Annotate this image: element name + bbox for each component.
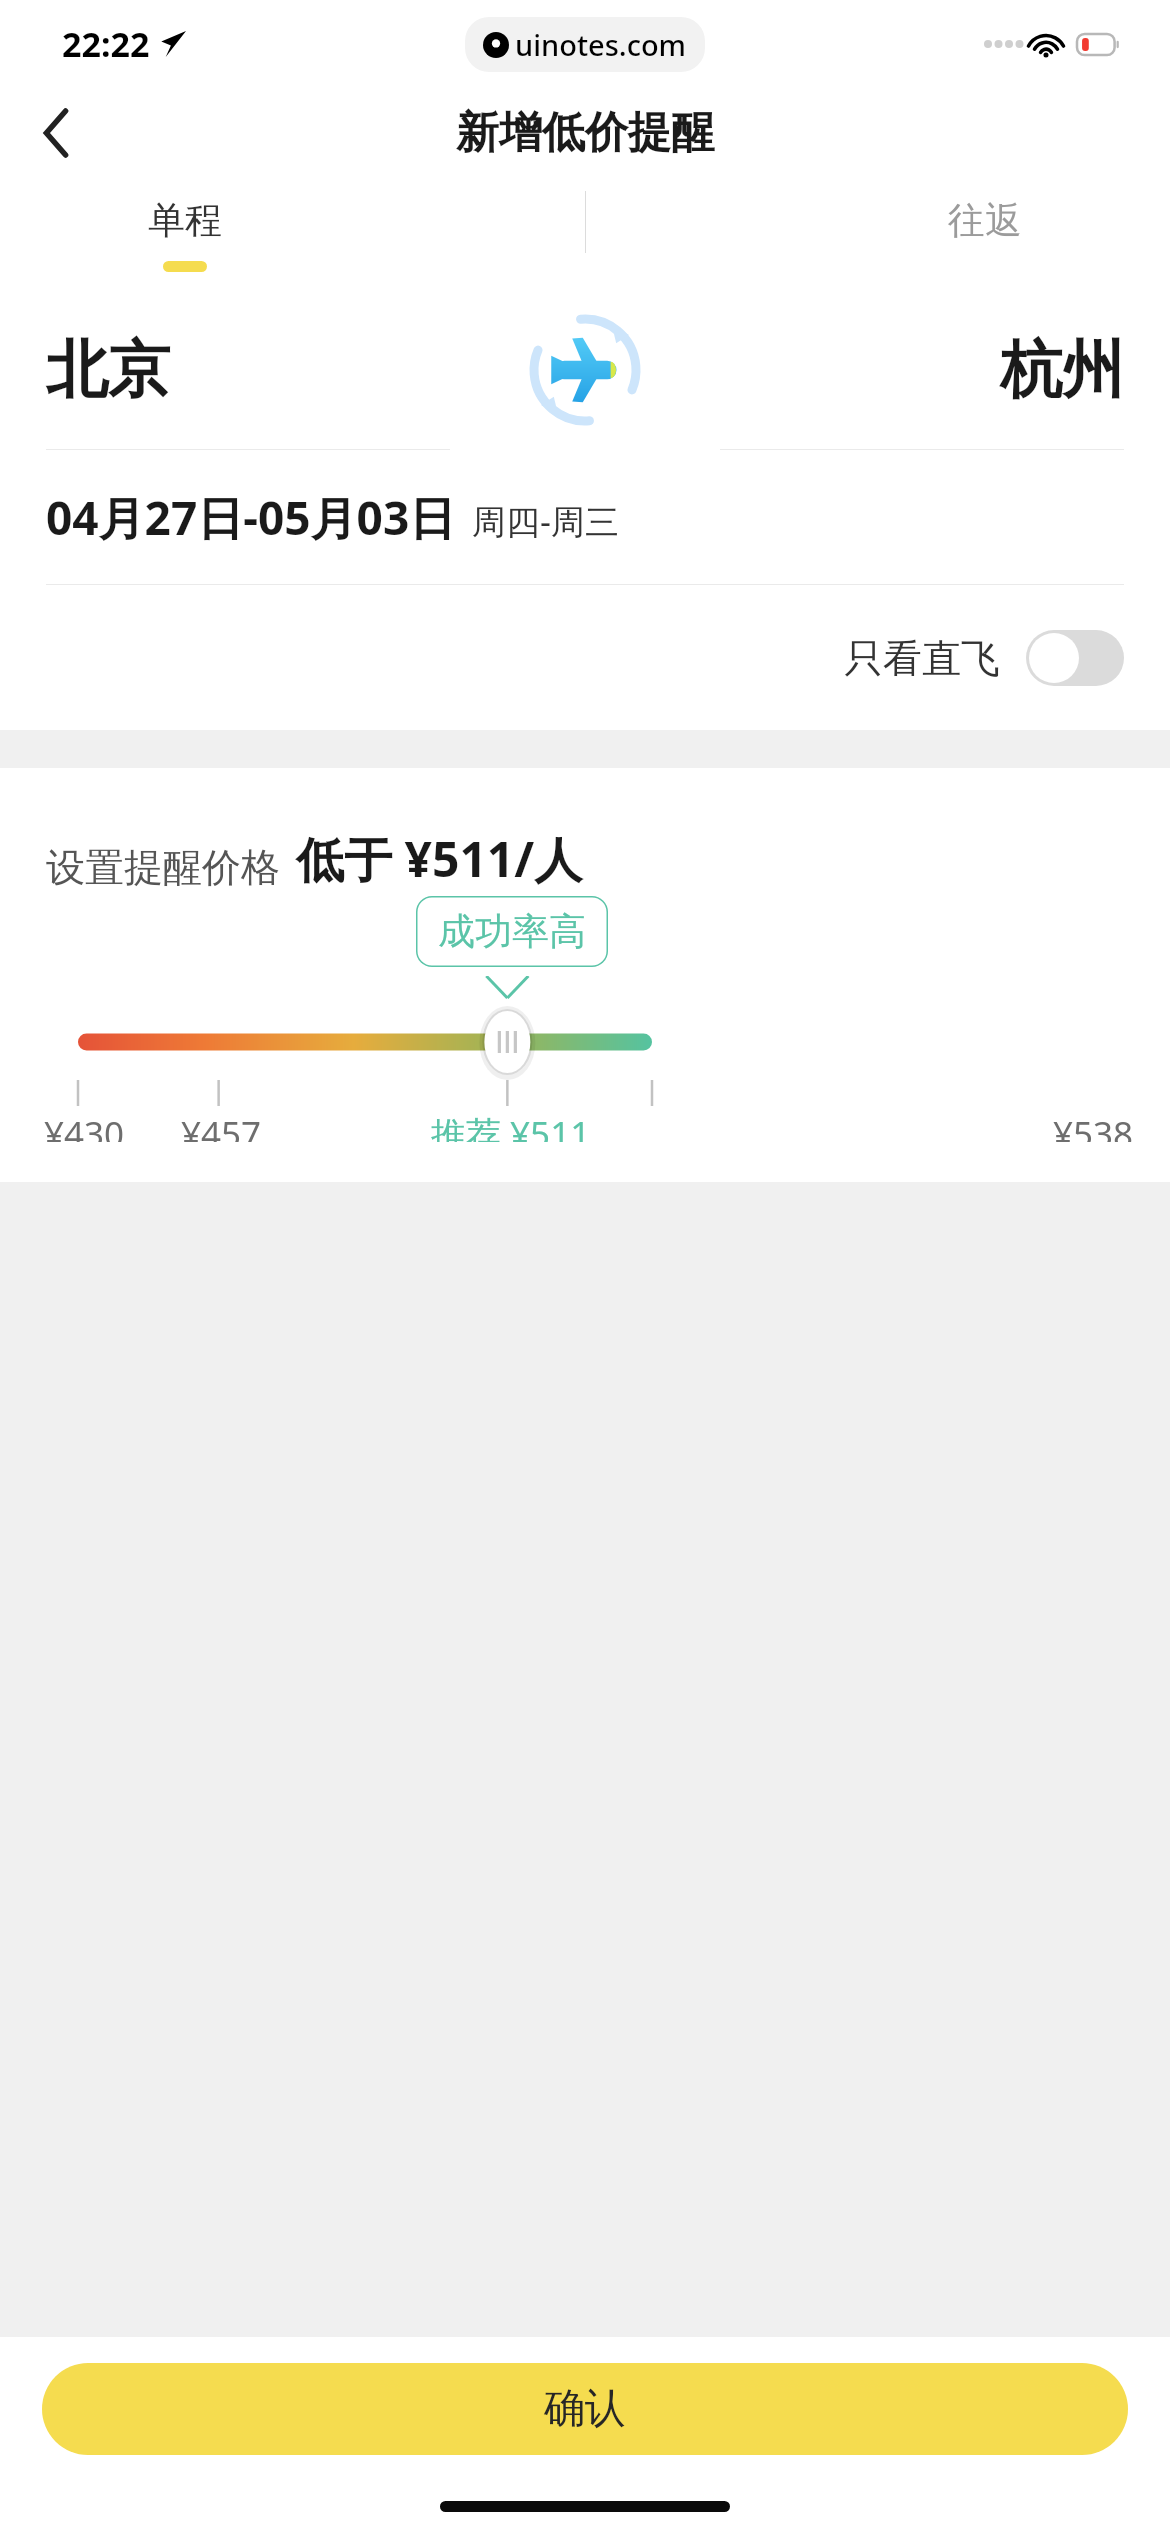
staticText: 北京: [46, 331, 170, 409]
staticText: 04月27日-05月03日: [46, 486, 456, 549]
staticText: ¥430: [44, 1110, 125, 1142]
button[interactable]: 北京: [46, 290, 485, 450]
button[interactable]: 成功率高: [416, 896, 608, 967]
staticText: ¥457: [181, 1110, 262, 1142]
staticText: 往返: [948, 197, 1022, 244]
staticText: 低于 ¥511/人: [296, 826, 583, 892]
button[interactable]: 04月27日-05月03日: [0, 450, 1170, 585]
button[interactable]: 杭州: [685, 290, 1124, 450]
staticText: 推荐 ¥511: [431, 1110, 591, 1142]
staticText: 单程: [148, 197, 222, 244]
staticText: 新增低价提醒: [456, 106, 714, 160]
button[interactable]: 确认: [42, 2363, 1128, 2455]
staticText: uinotes.com: [515, 25, 687, 64]
staticText: 周四-周三: [472, 498, 619, 544]
button[interactable]: 单程: [0, 178, 370, 290]
staticText: 只看直飞: [844, 634, 1000, 683]
staticText: 设置提醒价格: [46, 843, 280, 892]
button[interactable]: 往返: [800, 178, 1170, 262]
staticText: 成功率高: [438, 908, 586, 955]
staticText: 确认: [544, 2383, 626, 2435]
button[interactable]: Swap cities: [485, 290, 685, 450]
staticText: ¥538: [1053, 1110, 1134, 1142]
staticText: 杭州: [1000, 331, 1124, 409]
staticText: 22:22: [62, 21, 150, 67]
button[interactable]: Back: [16, 93, 96, 173]
button[interactable]: 只看直飞: [844, 630, 1124, 686]
